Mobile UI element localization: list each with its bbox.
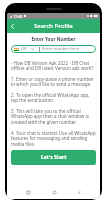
button[interactable]: Back [74, 187, 84, 197]
staticText: +91 [20, 46, 28, 52]
staticText: 2. To open the official WhatsApp app, ta… [11, 92, 96, 104]
staticText: - How DB Version Apk 2022 - DB Chat offl… [11, 60, 96, 72]
staticText: Let's Start [41, 154, 67, 161]
staticText: 4. Your chat is started. Use all WhatsAp… [11, 130, 96, 148]
button[interactable]: Let's Start [11, 150, 96, 165]
button[interactable]: Home [49, 187, 59, 197]
staticText: 17:40 [13, 14, 23, 19]
staticText: Search Profile [34, 22, 73, 30]
staticText: 1. Enter or copy-paste a phone number in… [11, 76, 96, 88]
staticText: 3. This will take you to the official Wh… [11, 108, 96, 126]
staticText: Enter Your Number [11, 36, 96, 42]
button[interactable]: +91 [11, 45, 96, 53]
button[interactable]: Back [7, 21, 18, 32]
button[interactable]: Recents [23, 187, 33, 197]
staticText: Enter number here [42, 46, 80, 52]
